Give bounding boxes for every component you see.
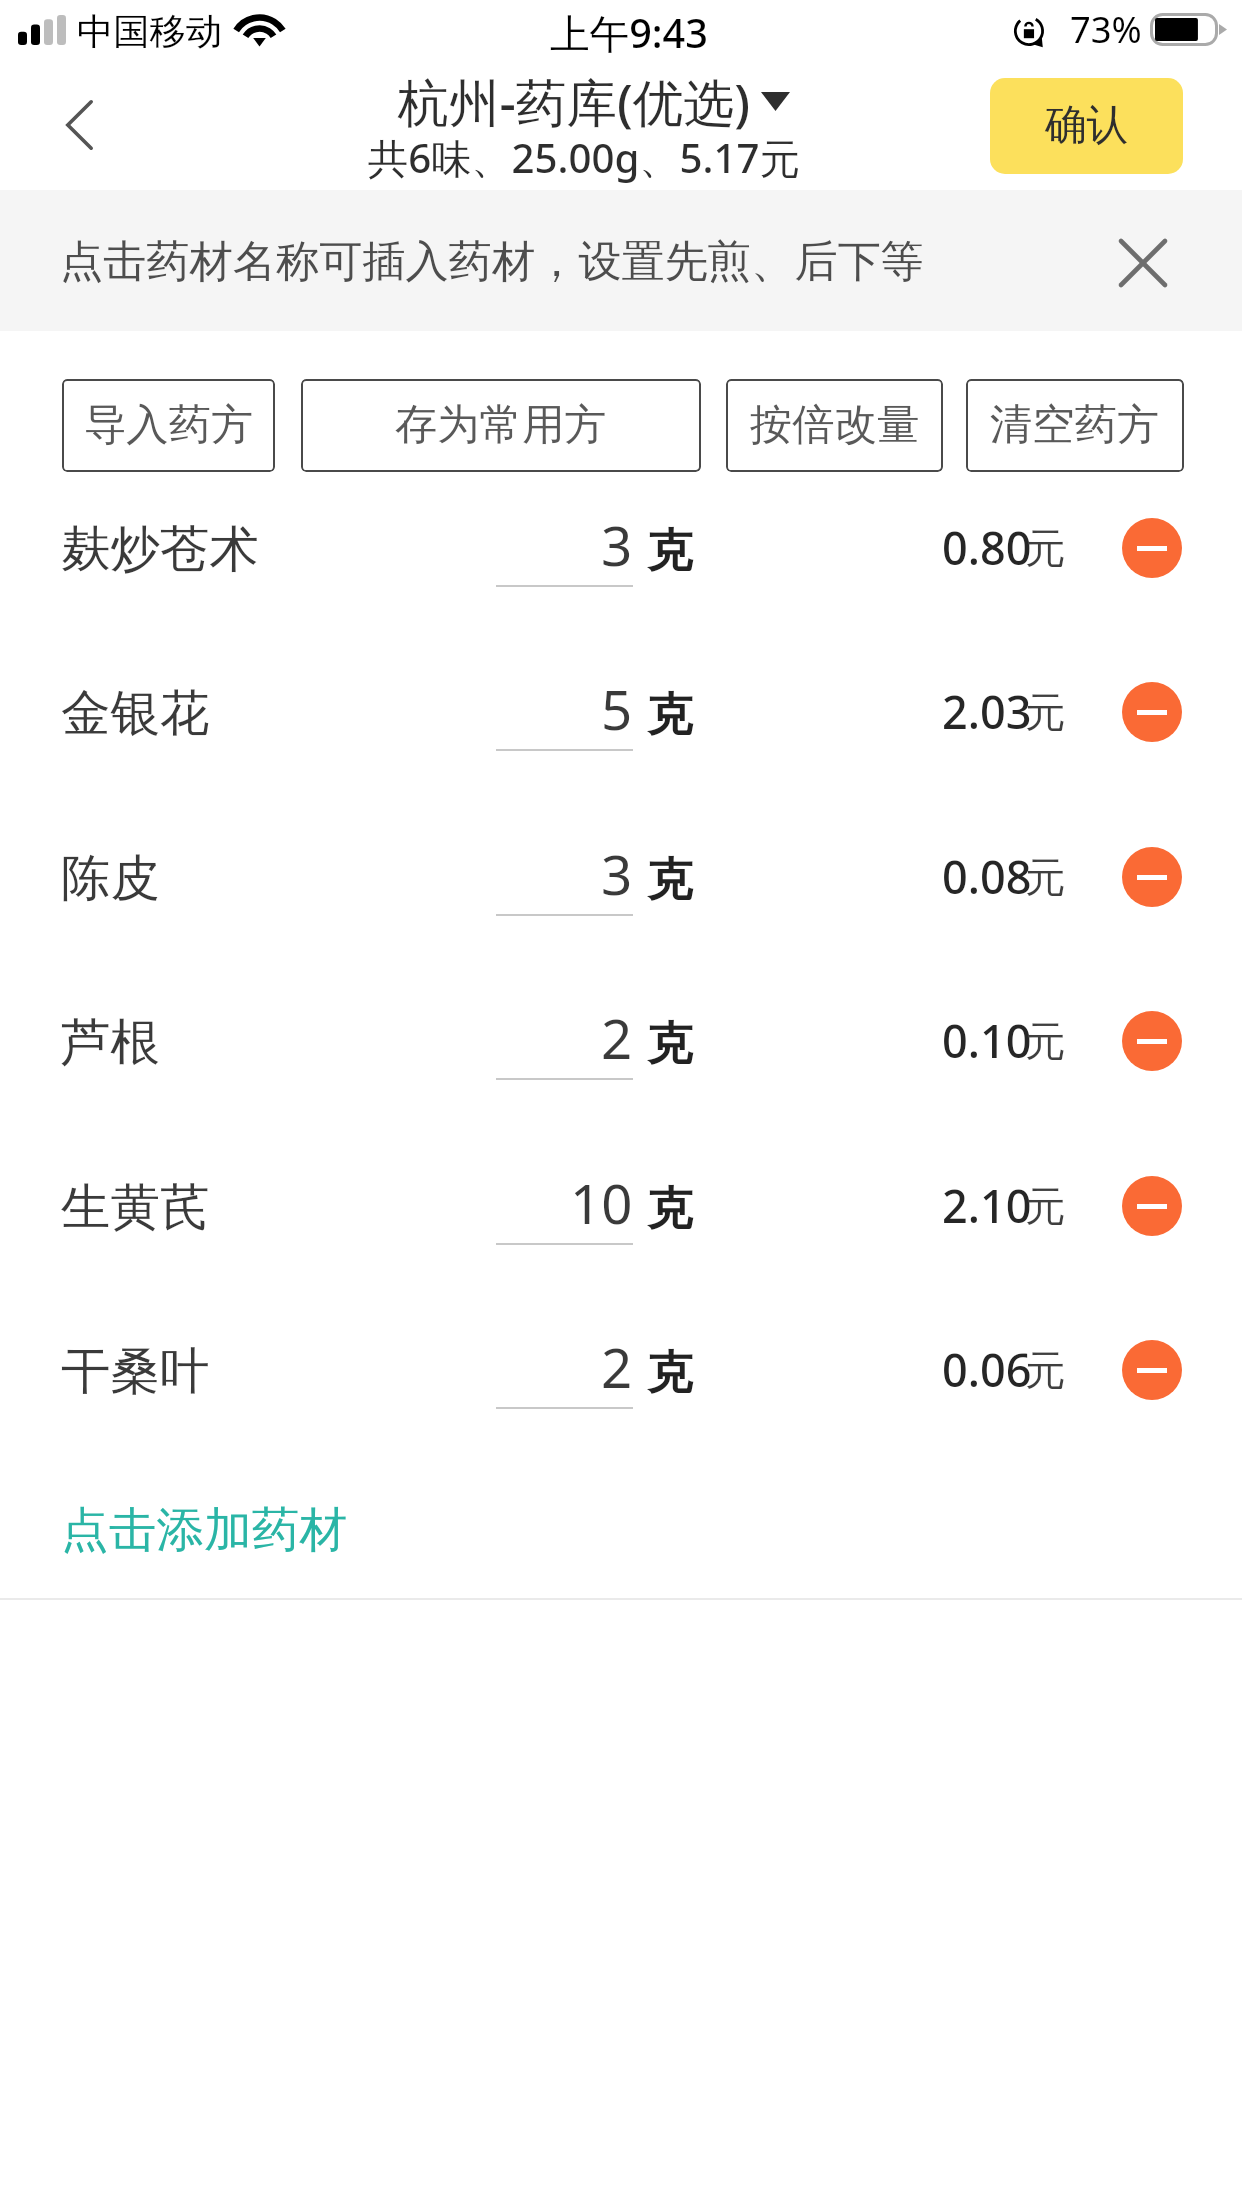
staticText: 0.06 [942, 1339, 1032, 1400]
staticText: 杭州-药库(优选) [398, 67, 751, 136]
button[interactable]: 芦根 [61, 1011, 160, 1073]
button[interactable]: 金银花 [61, 682, 210, 744]
staticText: 上午9:43 [550, 6, 708, 60]
staticText: 确认 [1045, 99, 1129, 152]
staticText: 3 [601, 508, 633, 582]
staticText: 存为常用方 [395, 398, 607, 451]
staticText: 2 [601, 1001, 633, 1075]
staticText: 0.80 [942, 517, 1032, 578]
staticText: 芦根 [61, 1011, 160, 1073]
staticText: 5 [601, 672, 633, 746]
staticText: 0.08 [942, 846, 1032, 907]
staticText: 点击药材名称可插入药材，设置先煎、后下等 [60, 234, 924, 288]
staticText: 2 [601, 1330, 633, 1404]
button[interactable]: 按倍改量 [726, 379, 943, 472]
staticText: 克 [647, 522, 693, 579]
button[interactable]: Remove [1122, 1340, 1182, 1400]
staticText: 元 [1025, 1181, 1066, 1232]
staticText: 克 [647, 1015, 693, 1072]
staticText: 克 [647, 851, 693, 908]
staticText: 金银花 [61, 682, 210, 744]
button[interactable]: Remove [1122, 1011, 1182, 1071]
button[interactable]: 导入药方 [62, 379, 275, 472]
staticText: 2.10 [942, 1175, 1032, 1236]
staticText: 导入药方 [84, 398, 254, 451]
button[interactable]: 生黄芪 [61, 1176, 210, 1238]
staticText: 元 [1025, 852, 1066, 903]
staticText: 中国移动 [77, 9, 223, 55]
button[interactable]: Remove [1122, 682, 1182, 742]
button[interactable]: 杭州-药库(优选) [398, 67, 790, 136]
staticText: 生黄芪 [61, 1176, 210, 1238]
staticText: 麸炒苍术 [61, 518, 259, 580]
button[interactable]: Remove [1122, 518, 1182, 578]
staticText: 陈皮 [61, 847, 160, 909]
staticText: 3 [601, 837, 633, 911]
staticText: 克 [647, 1344, 693, 1401]
button[interactable]: 点击添加药材 [0, 1464, 1242, 1596]
staticText: 点击添加药材 [61, 1500, 348, 1560]
staticText: 克 [647, 686, 693, 743]
staticText: 克 [647, 1180, 693, 1237]
button[interactable]: 麸炒苍术 [61, 518, 259, 580]
staticText: 元 [1025, 687, 1066, 738]
staticText: 元 [1025, 1345, 1066, 1396]
staticText: 73% [1070, 4, 1142, 53]
staticText: 2.03 [942, 681, 1032, 742]
button[interactable]: 确认 [990, 78, 1183, 174]
button[interactable]: Back [18, 60, 141, 190]
staticText: 10 [570, 1166, 633, 1240]
button[interactable]: Remove [1122, 1176, 1182, 1236]
staticText: 干桑叶 [61, 1340, 210, 1402]
staticText: 0.10 [942, 1010, 1032, 1071]
button[interactable]: Remove [1122, 847, 1182, 907]
button[interactable]: 清空药方 [966, 379, 1184, 472]
staticText: 按倍改量 [750, 398, 920, 451]
button[interactable]: 存为常用方 [301, 379, 701, 472]
button[interactable]: 陈皮 [61, 847, 160, 909]
staticText: 元 [1025, 523, 1066, 574]
button[interactable]: Close [1092, 212, 1194, 314]
staticText: 元 [1025, 1016, 1066, 1067]
staticText: 清空药方 [990, 398, 1160, 451]
staticText: 共6味、25.00g、5.17元 [368, 130, 800, 185]
button[interactable]: 干桑叶 [61, 1340, 210, 1402]
